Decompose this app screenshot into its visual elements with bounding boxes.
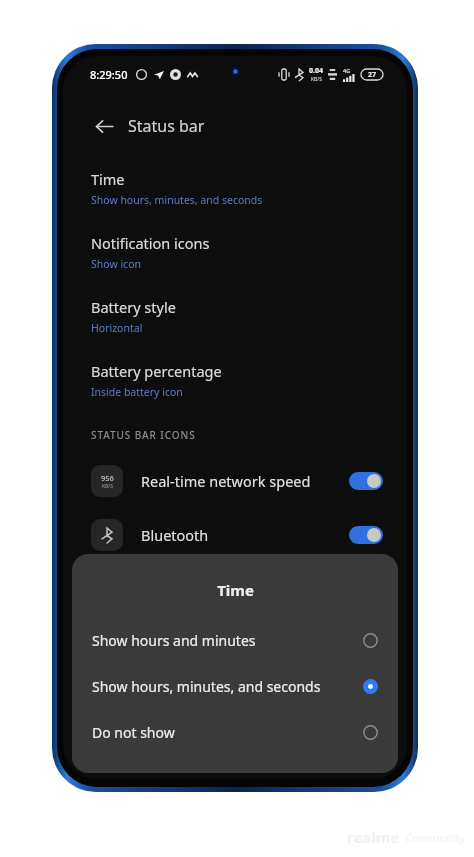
button[interactable]: Bluetooth [63,508,407,562]
staticText: KB/S [311,76,322,83]
staticText: Battery style [91,297,176,317]
staticText: Show hours, minutes, and seconds [92,677,363,696]
staticText: 4G [343,67,351,74]
staticText: KB/S [102,483,113,490]
button[interactable]: Do not show [72,709,398,755]
staticText: 0.04 [309,66,323,76]
button[interactable]: Time [63,156,407,220]
staticText: Status bar [128,115,205,137]
staticText: Horizontal [91,321,143,335]
staticText: STATUS BAR ICONS [91,428,196,442]
button[interactable]: Show hours, minutes, and seconds [72,663,398,709]
button[interactable]: Notification icons [63,220,407,284]
staticText: realme [347,827,400,847]
staticText: Battery percentage [91,361,222,381]
staticText: Time [217,580,254,600]
button[interactable]: Show hours and minutes [72,617,398,663]
staticText: 8:29:50 [90,67,128,82]
staticText: Inside battery icon [91,385,183,399]
button[interactable]: 956 [63,454,407,508]
staticText: Community [405,830,466,845]
staticText: Do not show [92,723,363,742]
staticText: 956 [101,473,114,483]
staticText: Notification icons [91,233,210,253]
staticText: Time [91,169,125,189]
button[interactable]: Battery style [63,284,407,348]
staticText: Bluetooth [141,525,349,545]
staticText: 27 [368,70,377,80]
staticText: Show hours and minutes [92,631,363,650]
staticText: Show hours, minutes, and seconds [91,193,263,207]
button[interactable]: Back [87,109,121,143]
staticText: Real-time network speed [141,471,349,491]
button[interactable]: Battery percentage [63,348,407,412]
staticText: Show icon [91,257,141,271]
